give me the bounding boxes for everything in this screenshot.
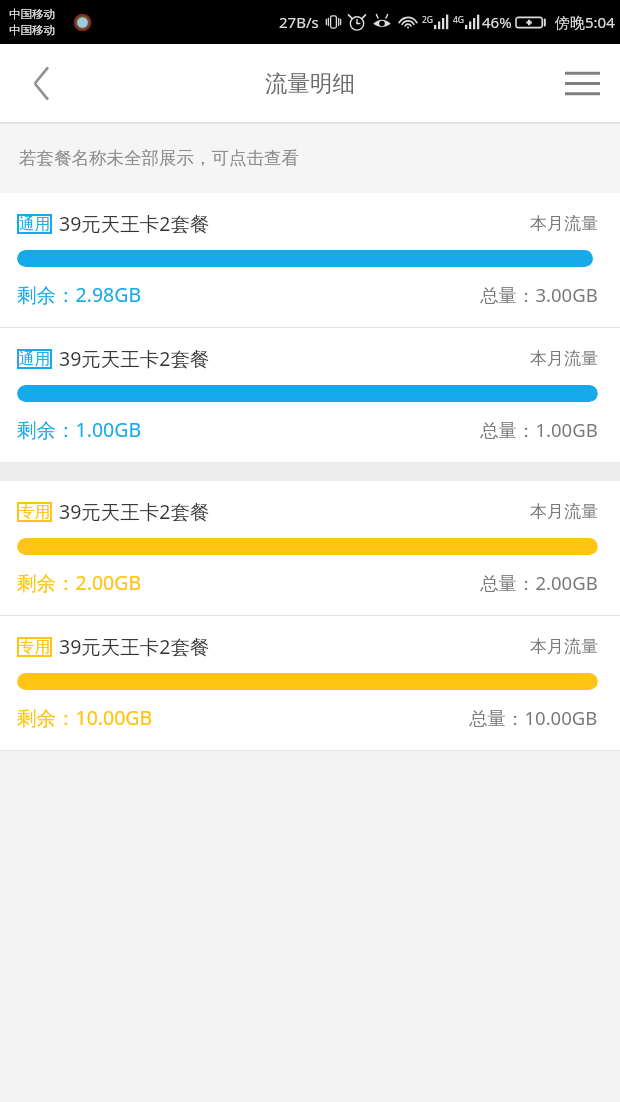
button[interactable]: 通用 — [0, 328, 620, 462]
staticText: 中国移动 — [9, 23, 55, 37]
button[interactable]: 专用 — [0, 481, 620, 615]
staticText: 总量：2.00GB — [480, 570, 598, 595]
staticText: 39元天王卡2套餐 — [59, 345, 210, 372]
staticText: 本月流量 — [530, 213, 598, 234]
staticText: 46% — [482, 12, 512, 32]
staticText: 27B/s — [279, 12, 319, 32]
staticText: 若套餐名称未全部展示，可点击查看 — [19, 147, 299, 169]
button[interactable]: 专用 — [0, 616, 620, 750]
staticText: 总量：1.00GB — [480, 417, 598, 442]
staticText: 本月流量 — [530, 636, 598, 657]
staticText: 流量明细 — [265, 69, 355, 97]
staticText: 本月流量 — [530, 501, 598, 522]
staticText: 39元天王卡2套餐 — [59, 210, 210, 237]
staticText: 总量：10.00GB — [469, 705, 598, 730]
staticText: 专用 — [19, 637, 50, 657]
staticText: 4G — [453, 14, 465, 26]
staticText: 本月流量 — [530, 348, 598, 369]
staticText: 剩余：2.00GB — [17, 569, 142, 596]
button[interactable]: Menu — [544, 44, 620, 122]
staticText: 剩余：2.98GB — [17, 281, 142, 308]
staticText: 中国移动 — [9, 7, 55, 21]
staticText: 通用 — [19, 214, 50, 234]
staticText: 傍晚5:04 — [555, 12, 615, 32]
staticText: 总量：3.00GB — [480, 282, 598, 307]
staticText: 通用 — [19, 349, 50, 369]
button[interactable]: Back — [0, 44, 84, 122]
staticText: 39元天王卡2套餐 — [59, 498, 210, 525]
staticText: 39元天王卡2套餐 — [59, 633, 210, 660]
staticText: 剩余：1.00GB — [17, 416, 142, 443]
staticText: 2G — [422, 14, 434, 26]
button[interactable]: 通用 — [0, 193, 620, 327]
staticText: 专用 — [19, 502, 50, 522]
staticText: 剩余：10.00GB — [17, 704, 153, 731]
